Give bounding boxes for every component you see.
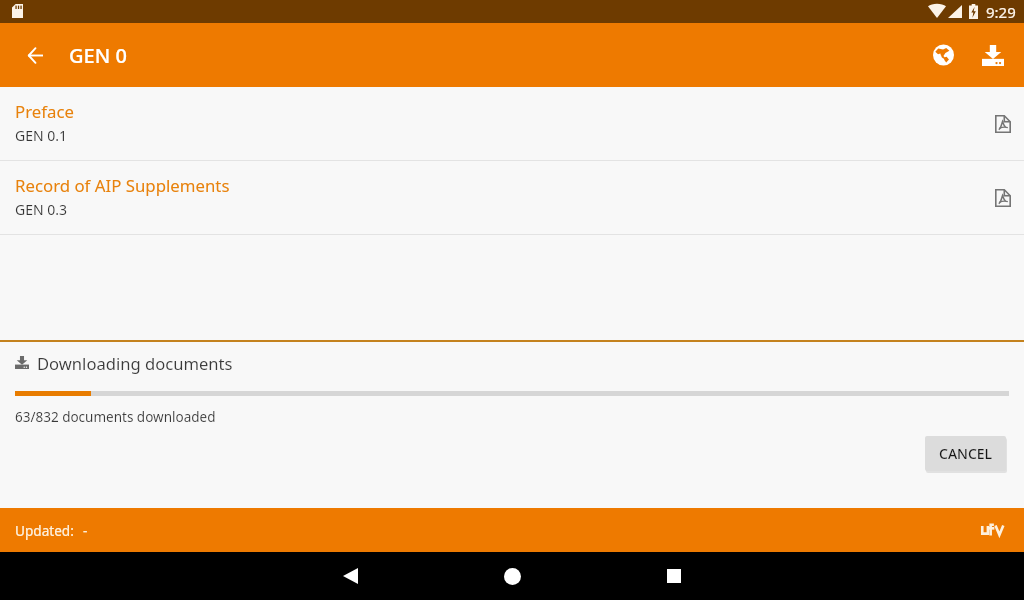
staticText: Updated: — [15, 521, 74, 540]
staticText: Record of AIP Supplements — [15, 174, 230, 197]
staticText: GEN 0 — [69, 42, 127, 69]
button[interactable]: Back — [318, 552, 382, 600]
button[interactable]: Record of AIP Supplements — [0, 161, 1024, 234]
staticText: CANCEL — [939, 444, 993, 463]
button[interactable]: Select language — [918, 23, 968, 87]
staticText: 9:29 — [986, 2, 1016, 22]
staticText: 63/832 documents downloaded — [15, 408, 216, 426]
button[interactable]: Download all documents — [968, 23, 1018, 87]
button[interactable]: Open PDF — [976, 161, 1024, 234]
staticText: Downloading documents — [37, 352, 233, 375]
staticText: Preface — [15, 100, 74, 123]
staticText: GEN 0.1 — [15, 126, 68, 145]
button[interactable]: Recent apps — [642, 552, 706, 600]
button[interactable]: Open PDF — [976, 87, 1024, 160]
staticText: - — [83, 521, 88, 540]
staticText: GEN 0.3 — [15, 200, 68, 219]
button[interactable]: Navigate up — [0, 23, 56, 87]
button[interactable]: Preface — [0, 87, 1024, 160]
button[interactable]: Home — [480, 552, 544, 600]
button[interactable]: CANCEL — [925, 436, 1006, 471]
